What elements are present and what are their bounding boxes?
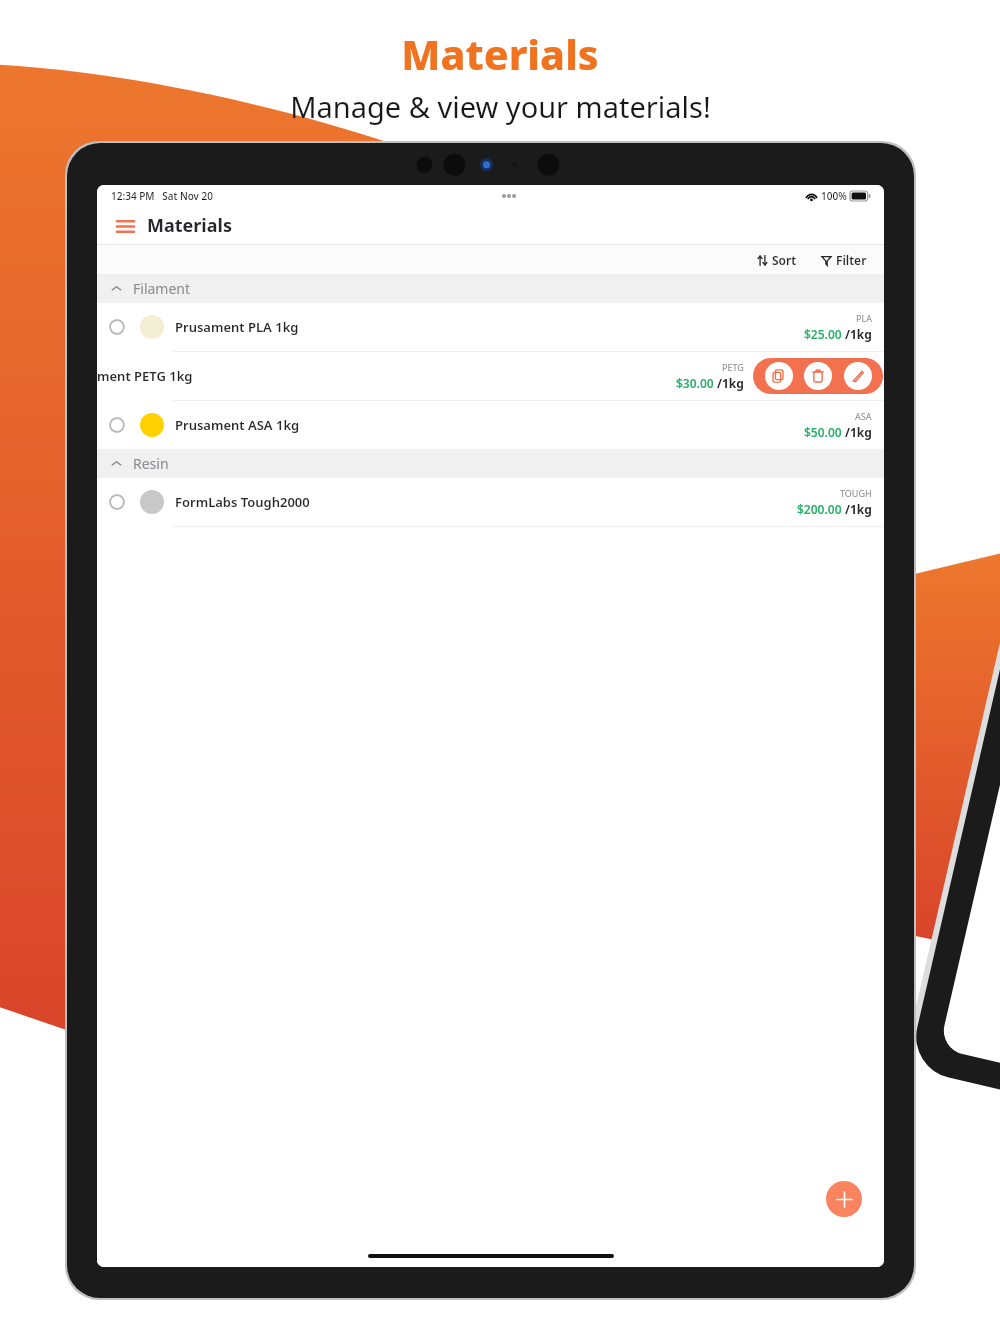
staticText: /1kg [717,375,744,391]
button[interactable]: Select FormLabs Tough2000 [97,478,884,526]
button[interactable]: Select Prusament PLA 1kg [97,303,884,351]
button[interactable]: Select FormLabs Tough2000 [109,494,125,510]
staticText: 100% [821,189,847,203]
button[interactable]: Select Prusament PLA 1kg [109,319,125,335]
button[interactable]: Resin [97,449,884,478]
button[interactable]: Duplicate [765,362,793,390]
staticText: $200.00 [797,501,842,517]
button[interactable]: ment PETG 1kg [97,352,884,400]
staticText: PETG [722,361,744,373]
button[interactable]: Sort [752,249,802,271]
staticText: ASA [855,410,872,422]
staticText: /1kg [845,501,872,517]
staticText: Filament [133,279,191,298]
staticText: $25.00 [804,326,842,342]
staticText: Resin [133,454,169,473]
staticText: Materials [401,26,599,82]
button[interactable]: Delete [804,362,832,390]
button[interactable]: Menu [111,212,139,240]
staticText: Prusament ASA 1kg [175,416,300,434]
button[interactable]: Filament [97,274,884,303]
staticText: TOUGH [840,487,872,499]
staticText: /1kg [845,326,872,342]
staticText: $30.00 [676,375,714,391]
button[interactable]: Edit [844,362,872,390]
staticText: ment PETG 1kg [97,367,193,385]
staticText: /1kg [845,424,872,440]
staticText: $50.00 [804,424,842,440]
staticText: Sort [772,252,797,268]
staticText: Materials [147,213,232,238]
button[interactable]: Select Prusament ASA 1kg [97,401,884,449]
staticText: Manage & view your materials! [290,87,711,126]
staticText: Prusament PLA 1kg [175,318,299,336]
button[interactable]: Add material [826,1181,862,1217]
staticText: Filter [836,252,867,268]
button[interactable]: Filter [816,249,872,271]
staticText: FormLabs Tough2000 [175,493,310,511]
staticText: 12:34 PM Sat Nov 20 [111,189,213,203]
staticText: PLA [856,312,872,324]
button[interactable]: Select Prusament ASA 1kg [109,417,125,433]
